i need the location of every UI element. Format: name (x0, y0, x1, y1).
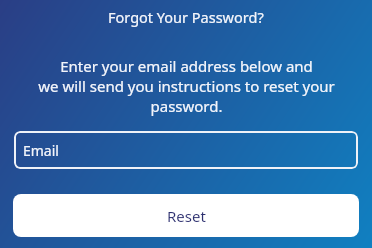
button[interactable]: Email (14, 131, 358, 169)
button[interactable]: Reset (13, 194, 359, 237)
staticText: Email (23, 141, 59, 160)
staticText: Reset (167, 206, 206, 226)
staticText: Enter your email address below and we wi… (38, 56, 335, 116)
staticText: Forgot Your Password? (108, 7, 264, 27)
